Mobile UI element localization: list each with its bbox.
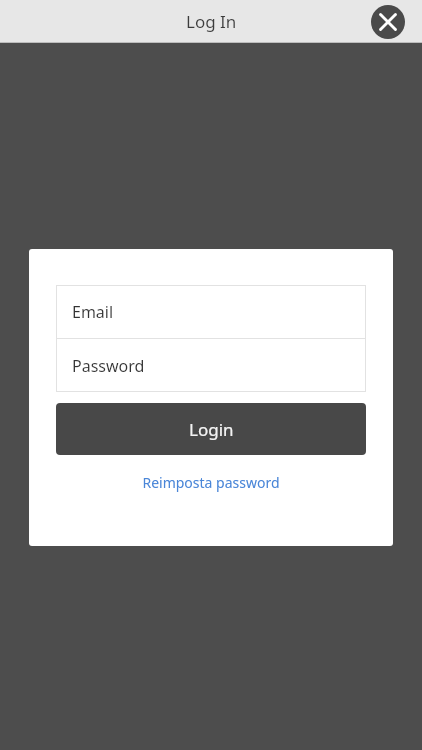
button[interactable]: Email: [56, 285, 366, 338]
button[interactable]: Password: [56, 339, 366, 392]
staticText: Log In: [186, 10, 237, 33]
staticText: Reimposta password: [142, 473, 280, 492]
button[interactable]: Login: [56, 403, 366, 455]
button[interactable]: Reimposta password: [56, 468, 366, 496]
staticText: Password: [72, 355, 145, 377]
button[interactable]: Close: [371, 5, 405, 39]
staticText: Login: [189, 418, 234, 441]
staticText: Email: [72, 301, 114, 323]
